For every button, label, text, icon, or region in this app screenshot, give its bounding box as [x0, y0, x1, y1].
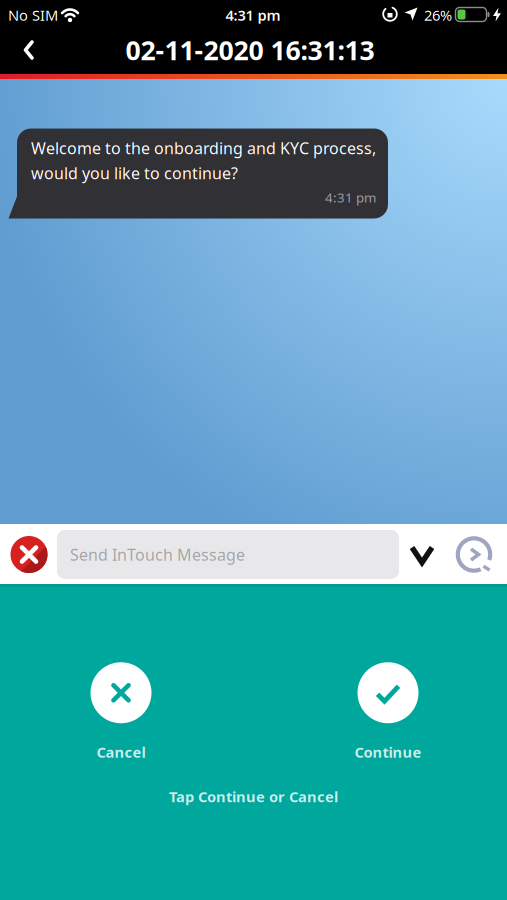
button[interactable]: Send InTouch Message	[57, 530, 399, 579]
button[interactable]: More options	[403, 538, 441, 571]
staticText: 26%	[424, 5, 452, 25]
staticText: would you like to continue?	[31, 162, 238, 184]
staticText: 02-11-2020 16:31:13	[125, 32, 374, 68]
button[interactable]: Back	[11, 28, 55, 72]
staticText: 4:31 pm	[225, 5, 280, 25]
staticText: 4:31 pm	[325, 188, 376, 206]
staticText: Tap Continue or Cancel	[169, 787, 338, 806]
button[interactable]: Cancel	[90, 662, 151, 762]
staticText: Continue	[354, 742, 421, 762]
staticText: No SIM	[8, 5, 58, 25]
staticText: Welcome to the onboarding and KYC proces…	[31, 137, 376, 159]
staticText: Send InTouch Message	[70, 544, 245, 565]
staticText: Cancel	[96, 742, 145, 762]
button[interactable]: Close	[10, 536, 47, 573]
button[interactable]: Send	[455, 535, 493, 573]
button[interactable]: Continue	[354, 662, 421, 762]
